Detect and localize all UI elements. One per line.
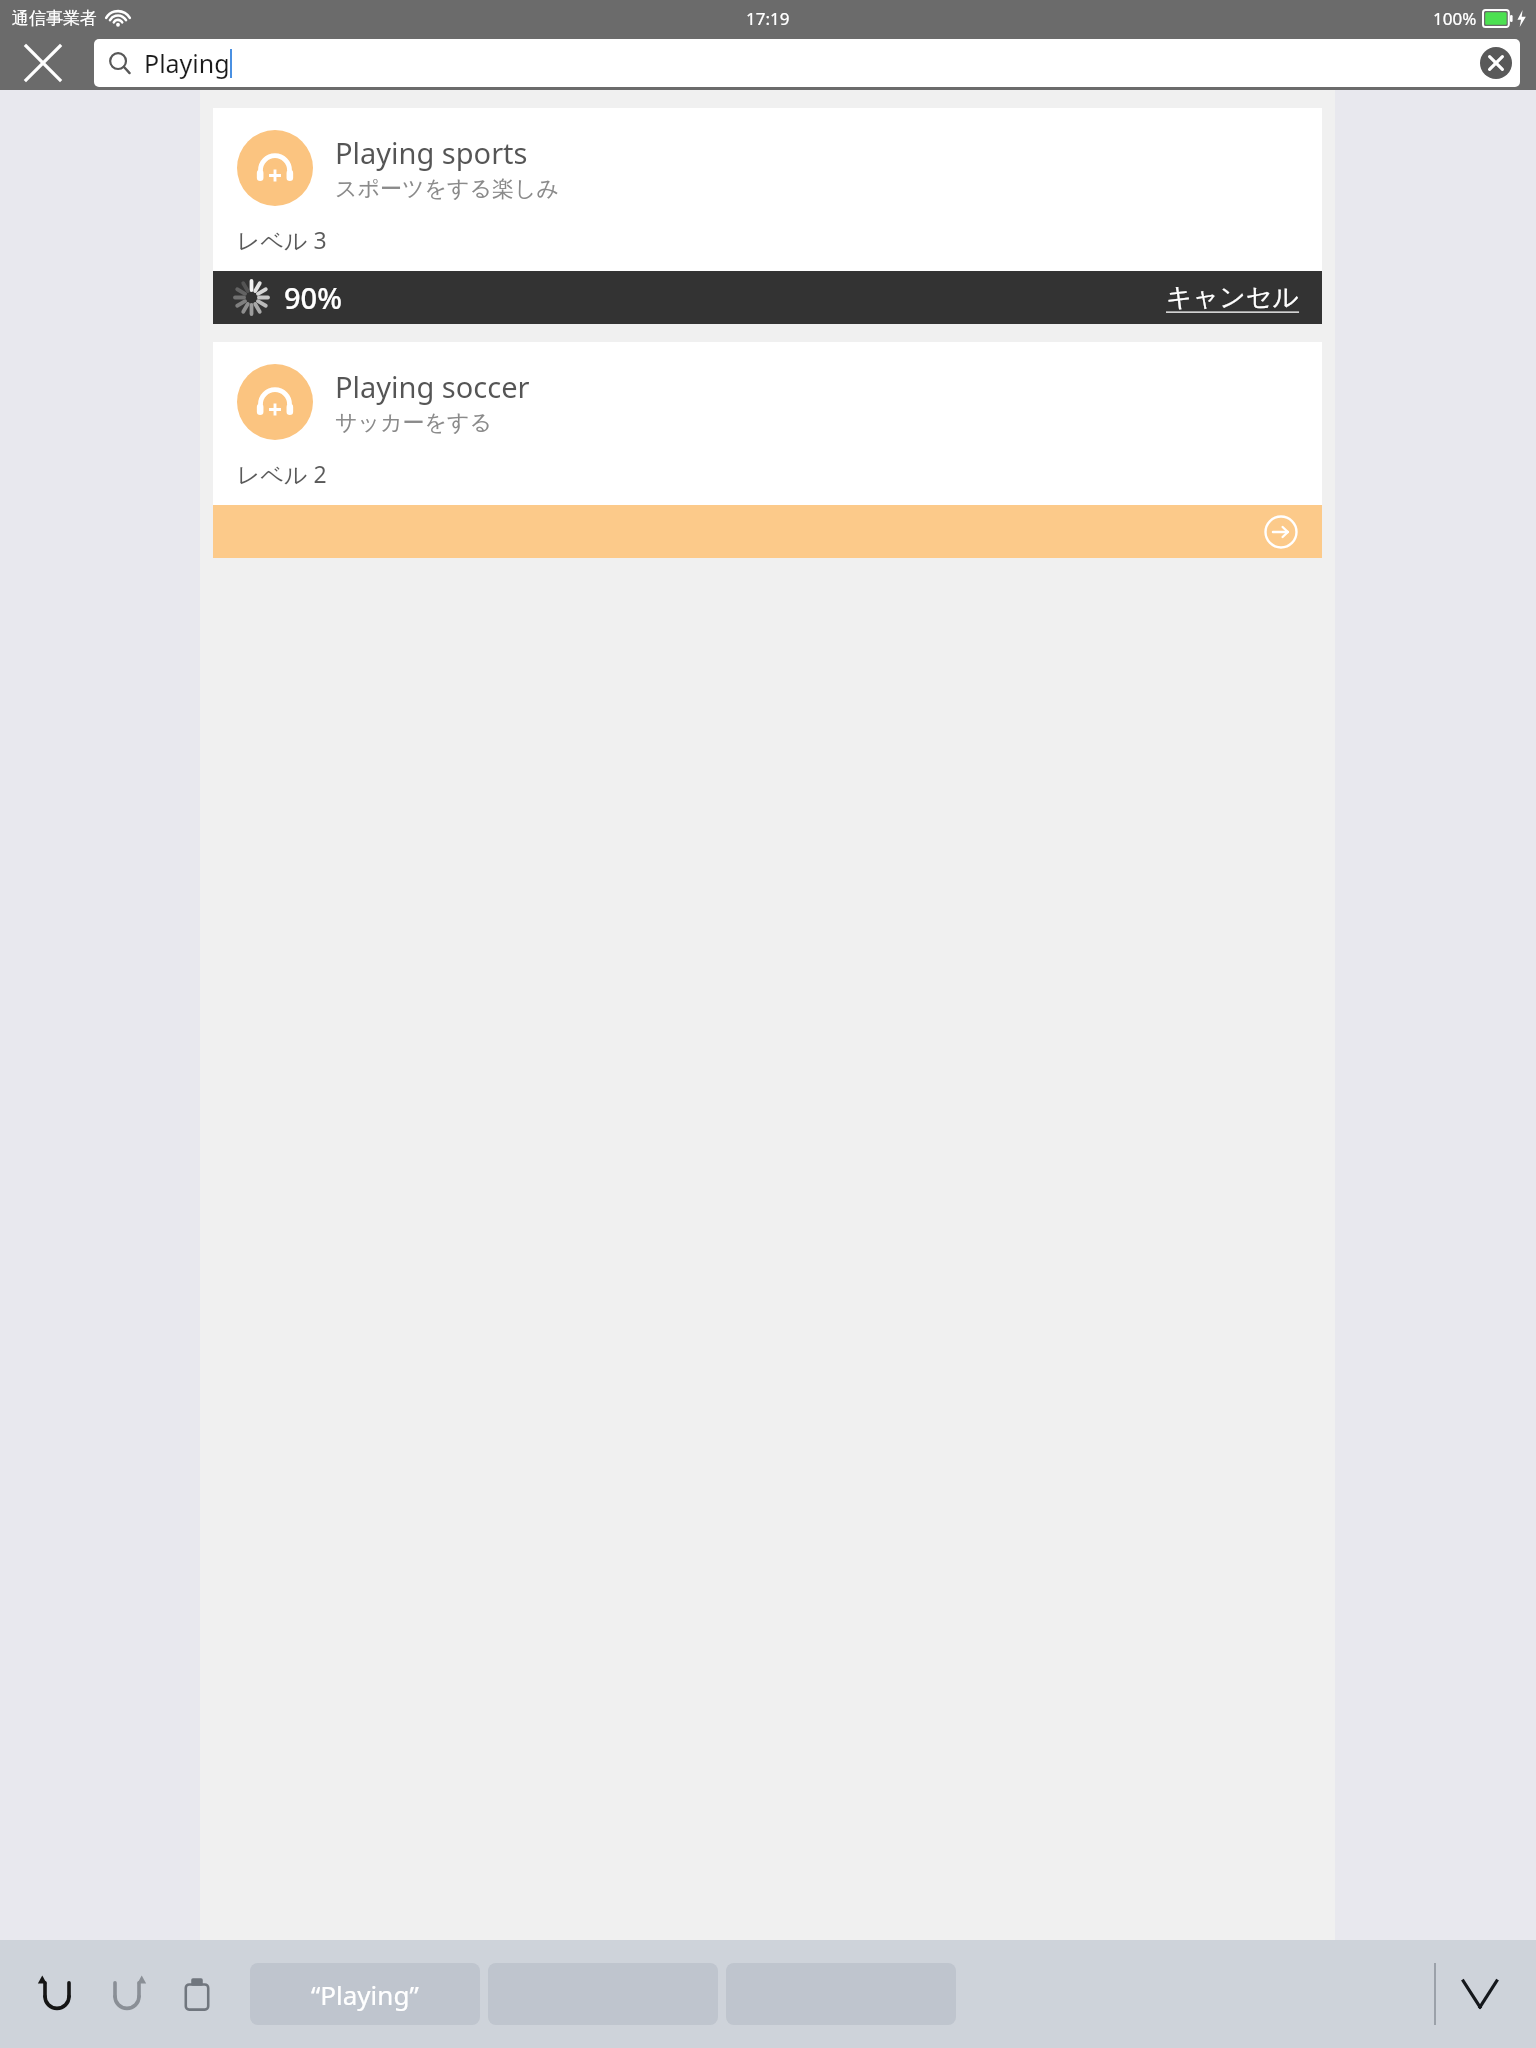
staticText: Playing sports [335,133,528,172]
button[interactable]: Redo [96,1963,158,2025]
staticText: 100% [1433,7,1477,30]
button[interactable]: Paste [166,1963,228,2025]
button[interactable]: Playing soccer [213,342,1322,558]
button[interactable]: Close [0,36,86,90]
button[interactable]: Playing [94,39,1520,87]
staticText: Playing soccer [335,367,530,406]
staticText: スポーツをする楽しみ [335,175,560,203]
staticText: “Playing” [311,1977,419,2012]
button[interactable]: Undo [26,1963,88,2025]
button[interactable]: キャンセル [1166,281,1300,314]
button[interactable]: 90% [213,271,1322,324]
button[interactable]: Hide keyboard [1436,1959,1524,2029]
staticText: レベル 2 [237,458,327,489]
staticText: サッカーをする [335,409,493,437]
button[interactable]: Start [213,505,1322,558]
button[interactable]: Playing sports [213,108,1322,324]
button[interactable]: “Playing” [250,1963,480,2025]
staticText: 17:19 [746,7,790,30]
button[interactable]: Clear text [1472,39,1520,87]
staticText: Playing [144,46,230,80]
staticText: 90% [284,278,342,317]
staticText: レベル 3 [237,224,327,255]
staticText: 通信事業者 [12,8,97,29]
